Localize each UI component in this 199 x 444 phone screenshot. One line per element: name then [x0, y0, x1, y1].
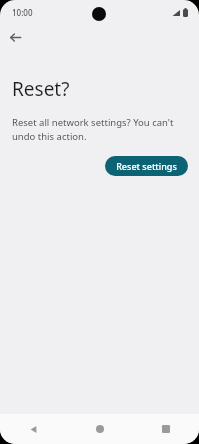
- button[interactable]: Back: [5, 27, 25, 47]
- button[interactable]: Home: [67, 414, 133, 444]
- staticText: 10:00: [12, 7, 33, 18]
- staticText: Reset settings: [116, 160, 177, 172]
- button[interactable]: Recent apps: [133, 414, 199, 444]
- button[interactable]: Back: [0, 414, 67, 444]
- staticText: Reset?: [12, 76, 70, 102]
- button[interactable]: Reset settings: [105, 156, 188, 176]
- staticText: Reset all network settings? You can't un…: [12, 116, 189, 143]
